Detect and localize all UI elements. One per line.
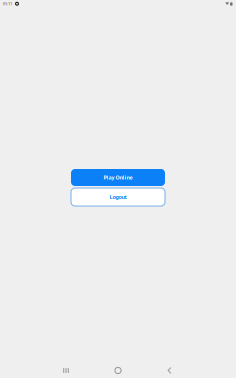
button[interactable]: Back (151, 363, 187, 378)
staticText: Logout (109, 193, 126, 201)
button[interactable]: Recent apps (48, 363, 84, 378)
button[interactable]: Logout (71, 188, 165, 206)
staticText: 01:11 (3, 1, 12, 6)
button[interactable]: Home (100, 363, 136, 378)
staticText: Play Online (103, 174, 132, 181)
button[interactable]: Play Online (71, 169, 165, 186)
